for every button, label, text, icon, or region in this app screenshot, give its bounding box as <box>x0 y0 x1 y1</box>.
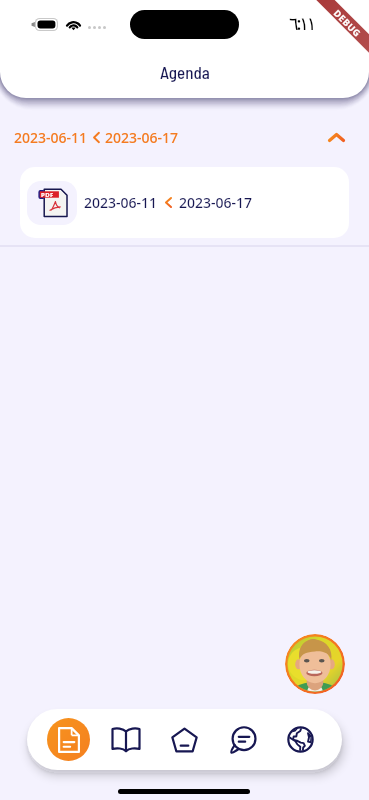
button[interactable]: Explore <box>279 718 322 761</box>
button[interactable]: PDF <box>20 167 349 238</box>
button[interactable]: Messages <box>221 718 264 761</box>
button[interactable]: Documents <box>47 718 90 761</box>
staticText: 2023-06-17 <box>179 193 253 212</box>
button[interactable]: Library <box>104 718 147 761</box>
button[interactable]: Collapse <box>321 122 351 152</box>
staticText: DEBUG <box>331 7 364 39</box>
button[interactable]: Home <box>163 718 206 761</box>
staticText: 2023-06-17 <box>105 128 179 147</box>
staticText: ٦:١١ <box>289 11 315 36</box>
staticText: PDF <box>41 191 54 199</box>
button[interactable]: Profile <box>285 634 345 694</box>
button[interactable]: 2023-06-11 <box>0 120 369 154</box>
staticText: 2023-06-11 <box>14 128 88 147</box>
staticText: 2023-06-11 <box>84 193 158 212</box>
staticText: Agenda <box>160 62 210 82</box>
